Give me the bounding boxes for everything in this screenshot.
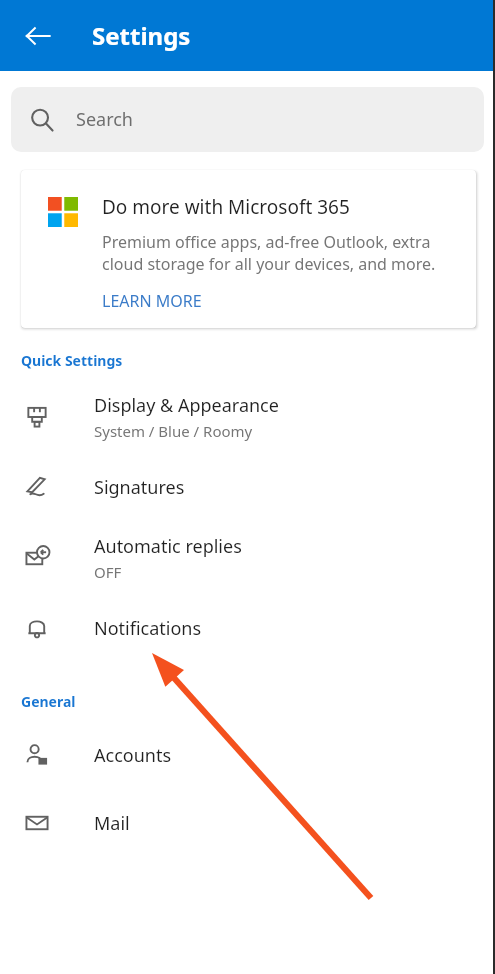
- staticText: Quick Settings: [21, 351, 123, 370]
- button[interactable]: Search: [11, 87, 484, 152]
- staticText: Accounts: [94, 743, 172, 768]
- staticText: Display & Appearance: [94, 393, 279, 418]
- staticText: Do more with Microsoft 365: [102, 194, 350, 220]
- staticText: Settings: [92, 19, 191, 52]
- staticText: Notifications: [94, 616, 202, 641]
- staticText: General: [21, 692, 76, 711]
- button[interactable]: Mail: [0, 789, 495, 857]
- staticText: System / Blue / Roomy: [94, 421, 253, 441]
- button[interactable]: Notifications: [0, 594, 495, 662]
- staticText: Premium office apps, ad-free Outlook, ex…: [102, 231, 452, 275]
- staticText: OFF: [94, 562, 122, 582]
- button[interactable]: Display & Appearance: [0, 380, 495, 453]
- button[interactable]: LEARN MORE: [102, 290, 202, 312]
- button[interactable]: Signatures: [0, 453, 495, 521]
- staticText: Signatures: [94, 475, 185, 500]
- staticText: Mail: [94, 811, 130, 836]
- button[interactable]: Automatic replies: [0, 521, 495, 594]
- button[interactable]: Back: [14, 12, 62, 60]
- button[interactable]: Accounts: [0, 721, 495, 789]
- staticText: Search: [76, 107, 133, 132]
- staticText: Automatic replies: [94, 534, 242, 559]
- button[interactable]: Do more with Microsoft 365: [21, 170, 476, 328]
